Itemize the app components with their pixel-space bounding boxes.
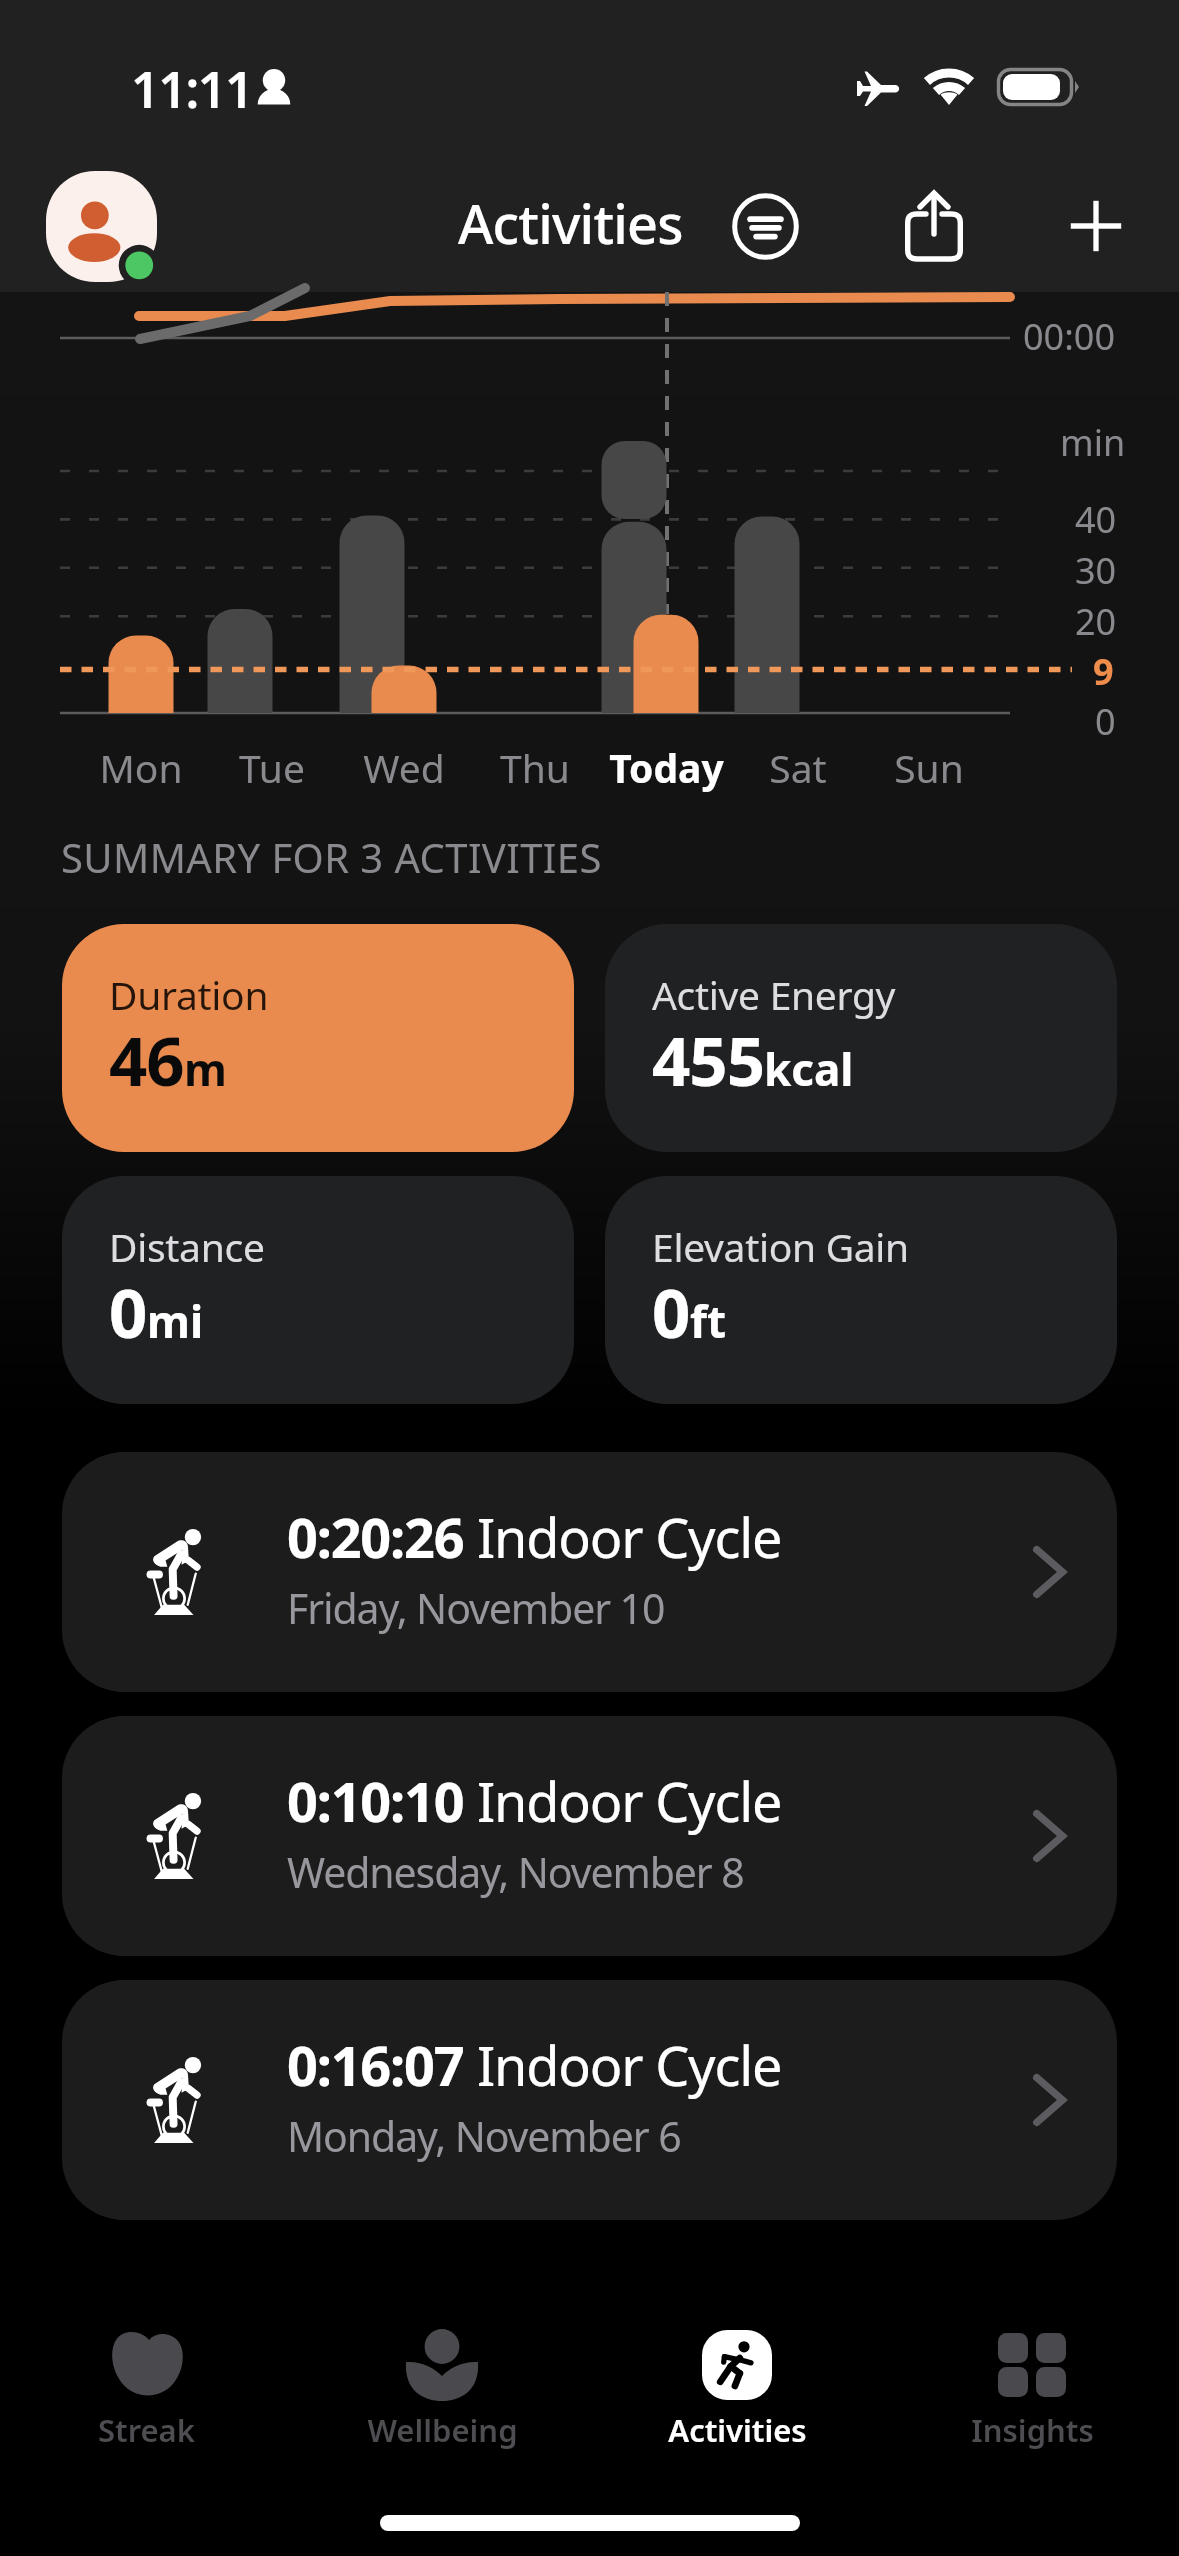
staticText: Active Energy (652, 968, 896, 1021)
button[interactable]: Add (1044, 174, 1148, 278)
button[interactable]: Filter (713, 174, 817, 278)
staticText: 20 (1075, 597, 1117, 646)
button[interactable]: Active Energy (605, 924, 1117, 1152)
staticText: Wed (363, 741, 445, 794)
staticText: Mon (99, 741, 183, 794)
staticText: Thu (500, 741, 570, 794)
staticText: Activities (458, 186, 683, 256)
staticText: 0 (652, 1266, 690, 1357)
staticText: 0:16:07 (287, 2028, 464, 2102)
staticText: Sat (769, 741, 827, 794)
staticText: 11:11 (131, 55, 253, 123)
staticText: 46 (109, 1014, 184, 1105)
button[interactable]: Wellbeing (310, 2329, 574, 2451)
button[interactable]: Activities (605, 2329, 869, 2451)
button[interactable]: Distance (62, 1176, 574, 1404)
staticText: 0:20:26 (287, 1500, 464, 1574)
staticText: Indoor Cycle (477, 2028, 782, 2102)
staticText: Indoor Cycle (477, 1764, 782, 1838)
staticText: Monday, November 6 (287, 2108, 681, 2164)
staticText: 00:00 (1023, 312, 1116, 361)
staticText: 0 (109, 1266, 147, 1357)
button[interactable]: 0:20:26 (62, 1452, 1117, 1692)
staticText: Wednesday, November 8 (287, 1844, 744, 1900)
staticText: 40 (1075, 495, 1117, 544)
staticText: Tue (239, 741, 305, 794)
staticText: 455 (652, 1014, 764, 1105)
staticText: ft (690, 1291, 727, 1351)
staticText: 0:10:10 (287, 1764, 464, 1838)
staticText: m (184, 1039, 227, 1099)
staticText: kcal (764, 1039, 854, 1099)
staticText: Activities (668, 2409, 807, 2451)
button[interactable]: Profile (46, 171, 157, 282)
button[interactable]: Streak (14, 2329, 278, 2451)
staticText: Indoor Cycle (477, 1500, 782, 1574)
staticText: 0 (1095, 697, 1116, 746)
staticText: Streak (98, 2409, 195, 2451)
staticText: Wellbeing (367, 2409, 518, 2451)
staticText: Today (609, 741, 724, 794)
staticText: Sun (894, 741, 964, 794)
staticText: min (1060, 418, 1126, 467)
staticText: Distance (109, 1220, 265, 1273)
staticText: Friday, November 10 (287, 1580, 665, 1636)
staticText: Elevation Gain (652, 1220, 909, 1273)
button[interactable]: Duration (62, 924, 574, 1152)
button[interactable]: Insights (900, 2329, 1164, 2451)
staticText: 30 (1075, 546, 1117, 595)
staticText: 9 (1093, 647, 1114, 696)
button[interactable]: 0:16:07 (62, 1980, 1117, 2220)
button[interactable]: Share (882, 174, 986, 278)
staticText: mi (147, 1291, 204, 1351)
button[interactable]: 0:10:10 (62, 1716, 1117, 1956)
staticText: Duration (109, 968, 269, 1021)
staticText: Insights (971, 2409, 1094, 2451)
staticText: SUMMARY FOR 3 ACTIVITIES (61, 830, 602, 884)
button[interactable]: Elevation Gain (605, 1176, 1117, 1404)
